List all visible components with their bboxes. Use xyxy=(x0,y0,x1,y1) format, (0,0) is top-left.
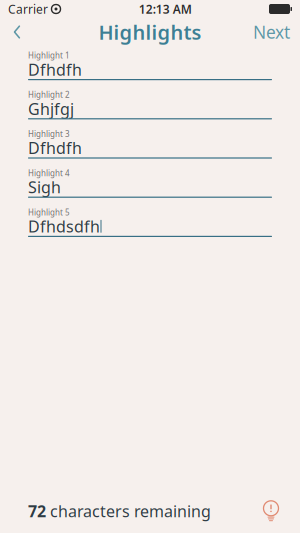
staticText: Highlight 1 xyxy=(28,50,70,61)
button[interactable]: Highlight 4 xyxy=(0,168,300,207)
staticText: Ghjfgj xyxy=(28,98,74,119)
button[interactable]: Highlight 2 xyxy=(0,89,300,128)
button[interactable]: Back xyxy=(0,17,34,47)
staticText: Highlights xyxy=(98,19,201,45)
staticText: Highlight 5 xyxy=(28,207,70,218)
button[interactable]: Highlight 5 xyxy=(0,207,300,246)
staticText: Dfhdfh xyxy=(28,59,82,80)
staticText: 72 xyxy=(28,500,46,522)
staticText: Highlight 2 xyxy=(28,89,70,100)
staticText: Highlight 3 xyxy=(28,129,70,139)
staticText: Highlight 4 xyxy=(28,168,70,178)
staticText: characters remaining xyxy=(46,500,211,522)
staticText: Dfhdfh xyxy=(28,137,82,158)
staticText: Dfhdsdfh xyxy=(28,216,100,237)
button[interactable]: Highlight 3 xyxy=(0,128,300,168)
staticText: Sigh xyxy=(28,176,61,198)
staticText xyxy=(48,1,51,17)
staticText: Carrier xyxy=(8,1,48,17)
staticText: 12:13 AM xyxy=(139,1,192,17)
staticText: Next xyxy=(253,20,290,43)
button[interactable]: Highlight 1 xyxy=(0,50,300,89)
button[interactable]: Tip xyxy=(256,496,286,526)
button[interactable]: Next xyxy=(243,17,300,47)
